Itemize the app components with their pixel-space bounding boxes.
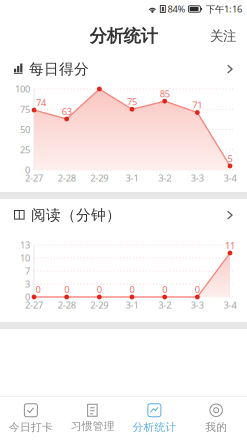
- staticText: 85: [160, 87, 170, 100]
- staticText: 3-2: [158, 299, 171, 311]
- button[interactable]: 关注: [199, 23, 247, 49]
- staticText: 63: [62, 105, 72, 118]
- staticText: 10: [20, 252, 30, 264]
- staticText: 3-4: [223, 172, 236, 184]
- staticText: 5: [227, 152, 232, 165]
- staticText: 71: [192, 99, 202, 111]
- button[interactable]: 分析统计: [123, 397, 185, 440]
- staticText: 3-3: [191, 299, 204, 311]
- staticText: 3: [25, 278, 30, 290]
- staticText: 3-1: [125, 299, 138, 311]
- staticText: 13: [20, 239, 30, 251]
- button[interactable]: 每日得分: [0, 56, 247, 82]
- staticText: 关注: [210, 28, 236, 44]
- button[interactable]: 习惯管理: [62, 397, 124, 440]
- staticText: 3-4: [223, 299, 236, 311]
- staticText: 11: [225, 239, 235, 252]
- staticText: 2-28: [58, 299, 76, 311]
- staticText: 3-1: [125, 172, 138, 184]
- button[interactable]: 阅读（分钟）: [0, 202, 247, 228]
- staticText: 3-3: [191, 172, 204, 184]
- staticText: 分析统计: [132, 421, 176, 434]
- staticText: 2-27: [25, 299, 43, 311]
- button[interactable]: 今日打卡: [0, 397, 62, 440]
- staticText: 2-29: [90, 299, 108, 311]
- staticText: 0: [35, 283, 40, 296]
- staticText: 74: [36, 96, 46, 109]
- staticText: 我的: [205, 421, 227, 434]
- staticText: 阅读（分钟）: [31, 206, 121, 224]
- staticText: 0: [195, 283, 200, 296]
- staticText: 今日打卡: [9, 421, 53, 434]
- button[interactable]: 我的: [185, 397, 247, 440]
- staticText: 0: [25, 291, 30, 303]
- staticText: 75: [20, 103, 30, 115]
- staticText: 2-29: [90, 172, 108, 184]
- staticText: 0: [97, 283, 102, 296]
- staticText: 25: [20, 144, 30, 156]
- staticText: 习惯管理: [71, 420, 115, 433]
- staticText: 3-2: [158, 172, 171, 184]
- staticText: 0: [162, 283, 167, 296]
- staticText: 0: [129, 283, 134, 296]
- staticText: 分析统计: [89, 25, 157, 47]
- staticText: 2-27: [25, 172, 43, 184]
- staticText: 下午1:16: [206, 3, 242, 15]
- staticText: 100: [15, 83, 30, 95]
- staticText: 0: [64, 283, 69, 296]
- staticText: 每日得分: [29, 60, 89, 78]
- staticText: 7: [25, 265, 30, 277]
- staticText: 75: [127, 96, 137, 108]
- staticText: 50: [20, 123, 30, 136]
- staticText: 84%: [167, 3, 185, 15]
- staticText: 2-28: [58, 172, 76, 184]
- staticText: 0: [25, 164, 30, 176]
